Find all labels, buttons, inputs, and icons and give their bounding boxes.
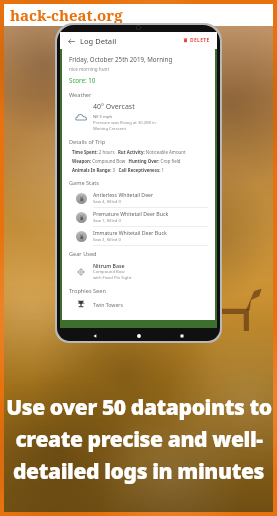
staticText: Trophies Seen <box>69 287 106 295</box>
staticText: Twin Towers <box>93 301 123 308</box>
staticText: Compound Bow <box>93 269 125 275</box>
staticText: create precise and well- <box>15 425 263 454</box>
other: Recents <box>179 333 185 339</box>
staticText: Weapon: Compound Bow Hunting Over: Crop … <box>72 158 181 164</box>
staticText: with Fixed Pin Sight <box>93 275 132 281</box>
staticText: Saw 1, Killed 0 <box>93 218 121 224</box>
staticText: Details of Trip <box>69 138 106 146</box>
staticText: Antlerless Whitetail Deer <box>93 191 154 198</box>
button[interactable]: Twin Towers <box>69 297 208 311</box>
staticText: nice morning hunt <box>69 66 110 72</box>
button[interactable]: Antlerless Whitetail Deer <box>69 189 208 207</box>
staticText: Gear Used <box>69 250 97 258</box>
staticText: 40° Overcast <box>93 102 135 112</box>
staticText: Weather <box>69 91 92 99</box>
staticText: Score: 10 <box>69 76 96 84</box>
other: Home <box>136 333 142 339</box>
staticText: hack-cheat.org <box>10 5 123 25</box>
button[interactable]: Nitrum Base <box>69 260 208 283</box>
button[interactable]: Back <box>65 35 77 47</box>
staticText: NE 5 mph <box>93 114 113 120</box>
staticText: Waning Crescent <box>93 126 127 132</box>
staticText: Immature Whitetail Deer Buck <box>93 229 167 236</box>
staticText: Saw 3, Killed 0 <box>93 237 121 243</box>
staticText: Nitrum Base <box>93 262 125 269</box>
staticText: DELETE <box>190 37 210 44</box>
staticText: Use over 50 datapoints to <box>6 393 272 422</box>
staticText: Log Detail <box>80 36 117 46</box>
button[interactable]: Premature Whitetail Deer Buck <box>69 208 208 226</box>
button[interactable]: DELETE <box>181 35 212 46</box>
staticText: Premature Whitetail Deer Buck <box>93 210 169 217</box>
staticText: Saw 4, Killed 0 <box>93 199 121 205</box>
staticText: Pressure was Rising at 30.280 in <box>93 120 156 126</box>
staticText: Game Stats <box>69 179 99 187</box>
staticText: Time Spent: 2 hours Rut Activity: Notice… <box>72 149 186 155</box>
staticText: Animals In Range: 3 Call Receptiveness: … <box>72 167 165 173</box>
staticText: detailed logs in minutes <box>13 457 264 486</box>
button[interactable]: Immature Whitetail Deer Buck <box>69 227 208 245</box>
other: Back <box>92 333 98 339</box>
staticText: Friday, October 25th 2019, Morning <box>69 55 173 63</box>
